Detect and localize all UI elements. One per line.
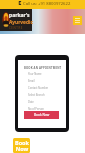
staticText: parkar's	[9, 12, 30, 19]
staticText: Date	[28, 100, 34, 104]
staticText: CENTRE	[9, 26, 23, 30]
button[interactable]: Menu	[73, 16, 82, 25]
staticText: Email	[28, 79, 35, 83]
staticText: Select Branch	[28, 93, 45, 97]
button[interactable]: parkar's	[0, 9, 32, 31]
staticText: Book Now	[15, 139, 29, 152]
staticText: BOOK AN APPOINTMENT	[24, 66, 62, 70]
staticText: No of Person	[28, 107, 44, 111]
button[interactable]: Book Now	[13, 138, 30, 153]
button[interactable]: Book Now	[24, 111, 59, 119]
staticText: Ayurvedic	[9, 19, 33, 26]
staticText: Your Name	[28, 72, 42, 76]
staticText: Call us: +91 8800972622	[23, 1, 71, 7]
staticText: Contact Number	[28, 86, 49, 90]
button[interactable]: Call us: +91 8800972622	[18, 0, 85, 6]
staticText: Book Now	[34, 113, 50, 117]
